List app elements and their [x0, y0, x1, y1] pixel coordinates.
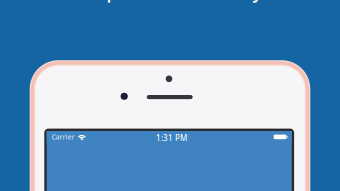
staticText: A simple habit each day [58, 0, 261, 3]
staticText: 1:31 PM [156, 133, 187, 143]
staticText: Carrier [52, 133, 75, 141]
